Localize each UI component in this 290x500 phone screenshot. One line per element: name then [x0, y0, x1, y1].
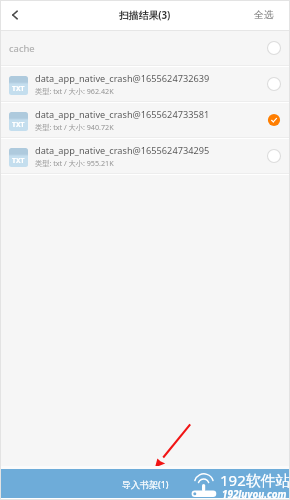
staticText: data_app_native_crash@1655624734295	[35, 144, 210, 157]
staticText: 导入书架(1)	[122, 478, 169, 490]
staticText: 扫描结果(3)	[119, 9, 171, 22]
button[interactable]: TXT	[0, 67, 290, 101]
staticText: TXT	[12, 156, 25, 165]
staticText: 类型: txt / 大小: 940.72K	[35, 122, 114, 132]
button[interactable]: TXT	[0, 139, 290, 173]
staticText: 192luyou.com	[222, 487, 287, 500]
staticText: 全选	[254, 9, 274, 21]
staticText: 192软件站	[220, 470, 290, 490]
button[interactable]: TXT	[0, 103, 290, 137]
staticText: 类型: txt / 大小: 955.21K	[35, 158, 114, 168]
button[interactable]: cache	[0, 31, 290, 65]
staticText: 类型: txt / 大小: 962.42K	[35, 86, 114, 96]
staticText: TXT	[12, 84, 25, 93]
staticText: TXT	[12, 120, 25, 129]
staticText: data_app_native_crash@1655624732639	[35, 72, 210, 85]
button[interactable]: Back	[0, 0, 30, 30]
button[interactable]: 导入书架(1)	[0, 469, 290, 498]
staticText: cache	[9, 42, 35, 55]
button[interactable]: 全选	[242, 0, 290, 30]
staticText: data_app_native_crash@1655624733581	[35, 108, 210, 121]
